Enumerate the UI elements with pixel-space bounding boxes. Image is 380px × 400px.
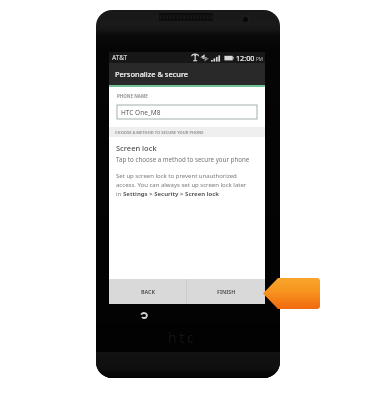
staticText: htc: [168, 328, 197, 347]
staticText: Personalize & secure: [115, 69, 189, 79]
button[interactable]: Screen lock: [109, 143, 265, 163]
staticText: PM: [256, 56, 263, 62]
staticText: 12:00: [236, 53, 255, 63]
staticText: Tap to choose a method to secure your ph…: [116, 155, 250, 163]
button[interactable]: HTC One_M8: [117, 105, 257, 119]
staticText: Settings > Security > Screen lock: [123, 190, 220, 198]
staticText: BACK: [141, 288, 155, 295]
staticText: HTC One_M8: [121, 108, 161, 117]
staticText: CHOOSE A METHOD TO SECURE YOUR PHONE: [115, 130, 204, 135]
staticText: access. You can always set up screen loc…: [116, 181, 247, 189]
staticText: FINISH: [217, 288, 236, 295]
button[interactable]: Finish highlight: [263, 278, 320, 309]
staticText: Screen lock: [116, 143, 157, 153]
button[interactable]: Personalize & secure: [109, 63, 265, 85]
staticText: AT&T: [112, 53, 128, 62]
staticText: PHONE NAME: [117, 93, 148, 99]
staticText: Set up screen lock to prevent unauthoriz…: [116, 172, 237, 180]
button[interactable]: FINISH: [187, 279, 265, 304]
button[interactable]: BACK: [109, 279, 186, 304]
button[interactable]: Back: [139, 311, 149, 320]
staticText: in: [116, 190, 123, 198]
